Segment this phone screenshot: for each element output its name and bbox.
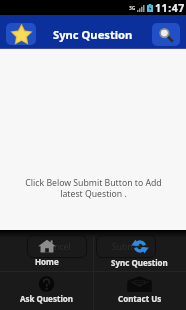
staticText: Ask Question <box>20 293 73 304</box>
staticText: 11:47 <box>155 1 185 15</box>
button[interactable]: Search <box>152 23 180 46</box>
button[interactable]: Favourites <box>6 23 36 45</box>
staticText: Click Below Submit Button to Add latest … <box>25 177 162 200</box>
button[interactable]: Home <box>0 230 93 271</box>
button[interactable]: Contact Us <box>93 271 186 310</box>
button[interactable]: Sync Question <box>93 230 186 271</box>
staticText: Submit <box>112 241 141 253</box>
staticText: Home <box>35 256 59 267</box>
staticText: Contact Us <box>118 293 162 304</box>
staticText: Sync Question <box>53 27 133 42</box>
button[interactable]: Ask Question <box>0 271 93 310</box>
staticText: Cancel <box>44 241 71 253</box>
staticText: 3G <box>129 5 136 12</box>
staticText: Sync Question <box>111 257 168 268</box>
